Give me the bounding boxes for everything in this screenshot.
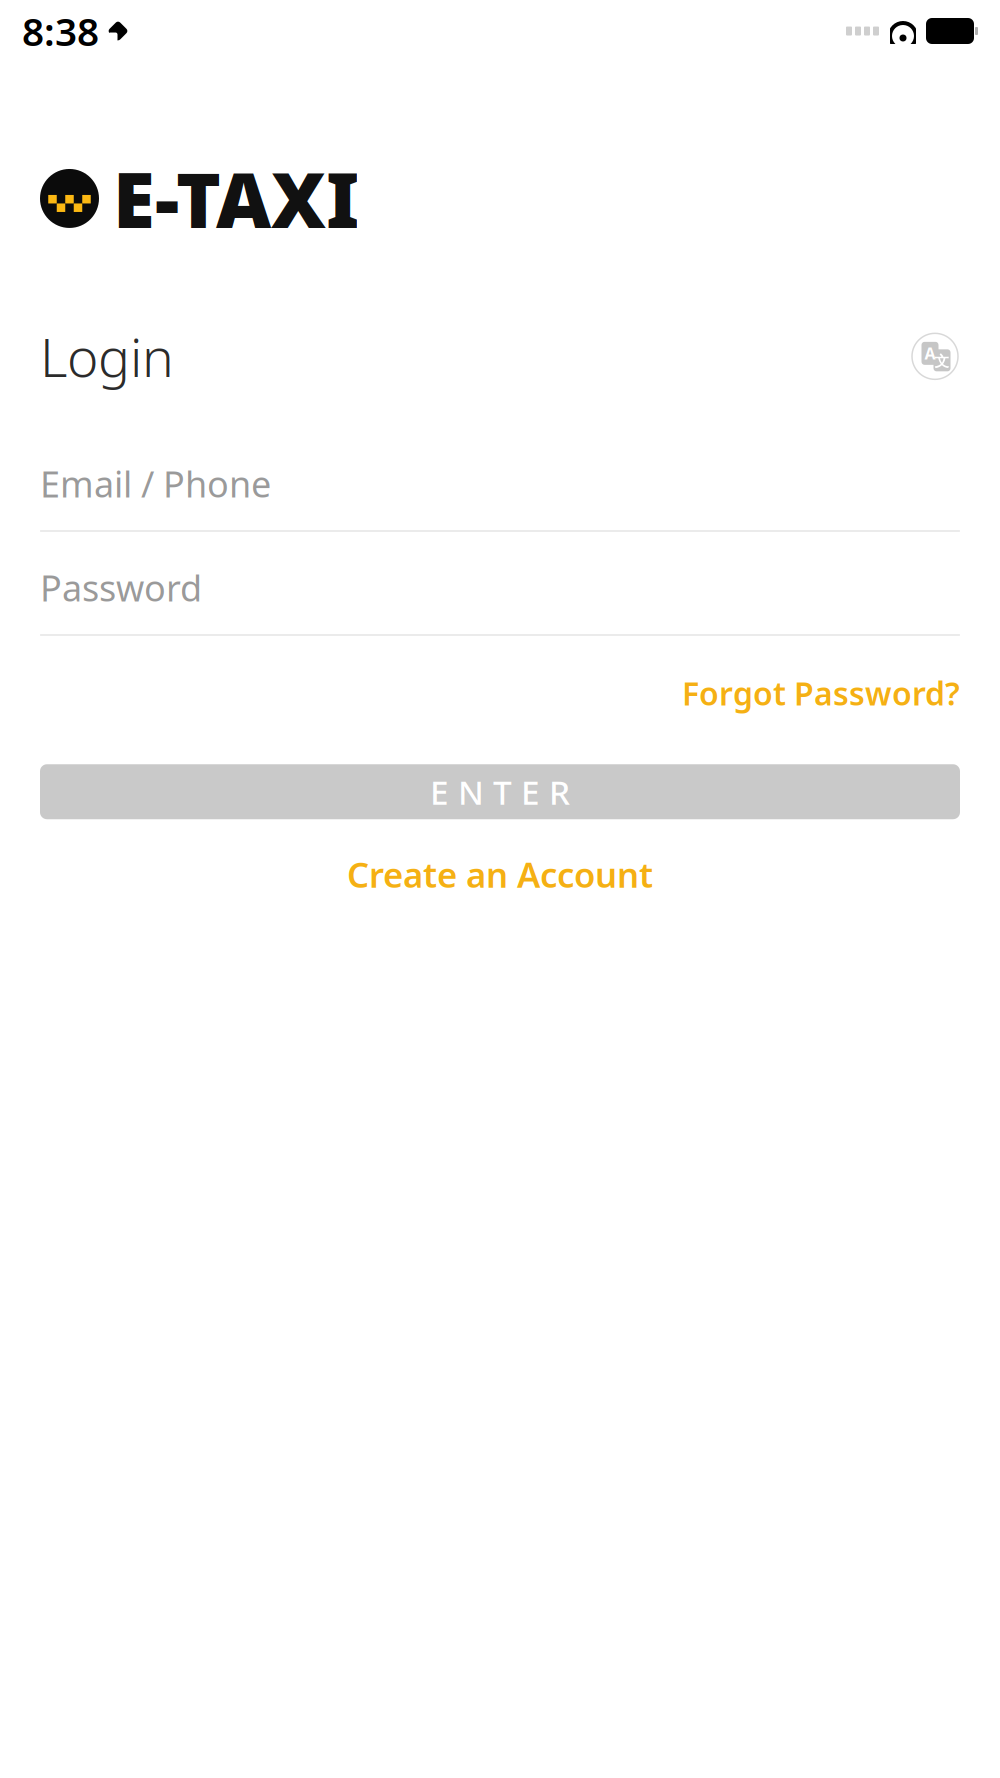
button[interactable]: Create an Account [347,841,653,907]
staticText: Forgot Password? [682,672,960,714]
button[interactable]: Change language [910,331,960,381]
staticText: Password [40,564,202,611]
staticText: Login [40,321,174,392]
button[interactable]: E N T E R [40,764,960,819]
button[interactable]: Email / Phone [40,460,960,532]
staticText: Email / Phone [40,460,271,507]
staticText: E-TAXI [113,148,359,249]
staticText: E N T E R [430,770,570,814]
staticText: 8:38 [22,5,99,57]
staticText: 文 [934,352,949,370]
button[interactable]: Password [40,564,960,636]
button[interactable]: Forgot Password? [682,664,960,722]
staticText: A [924,343,935,364]
staticText: Create an Account [347,851,653,897]
